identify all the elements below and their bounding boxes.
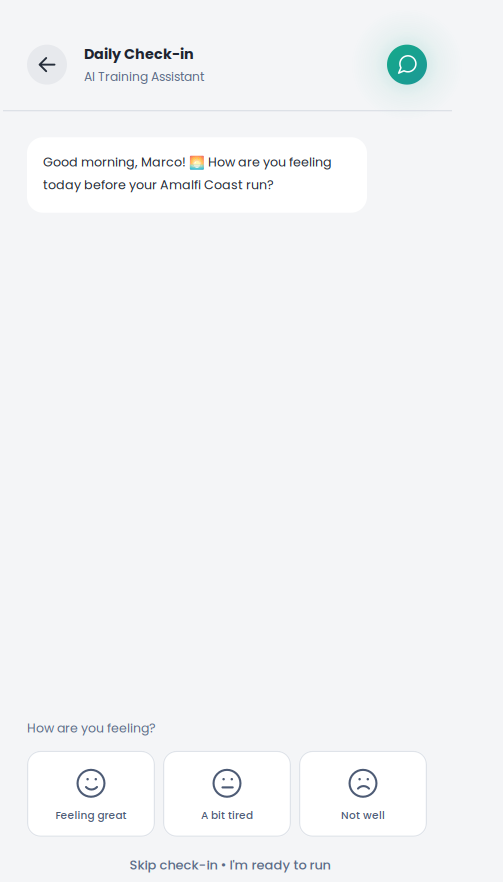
button[interactable]: Back <box>27 45 67 85</box>
staticText: Skip check-in • I'm ready to run <box>129 856 330 874</box>
button[interactable]: Not well <box>299 751 427 837</box>
staticText: Feeling great <box>55 808 126 823</box>
staticText: Daily Check-in <box>84 44 194 64</box>
staticText: A bit tired <box>201 808 253 823</box>
staticText: Not well <box>341 808 385 823</box>
staticText: AI Training Assistant <box>84 68 204 85</box>
staticText: Good morning, Marco! 🌅 How are you feeli… <box>43 153 332 194</box>
button[interactable]: Skip check-in • I'm ready to run <box>30 837 430 882</box>
button[interactable]: Open chat <box>387 45 427 85</box>
button[interactable]: A bit tired <box>163 751 291 837</box>
staticText: How are you feeling? <box>27 719 156 737</box>
button[interactable]: Feeling great <box>27 751 155 837</box>
